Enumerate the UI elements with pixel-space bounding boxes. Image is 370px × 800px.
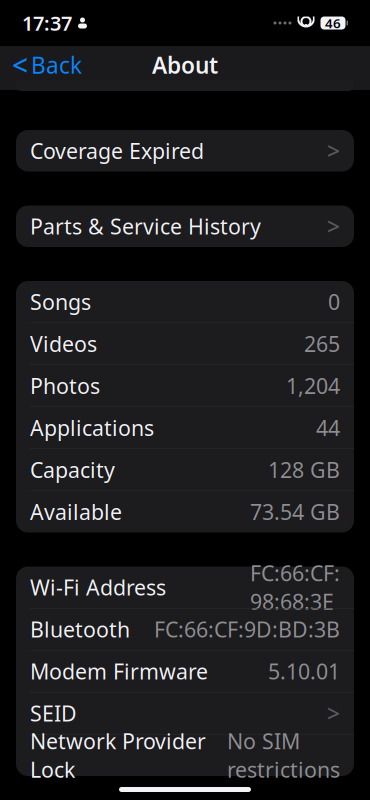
staticText: > <box>327 698 340 728</box>
staticText: SEID <box>30 699 77 727</box>
staticText: 1,204 <box>286 372 340 400</box>
staticText: Songs <box>30 288 91 316</box>
staticText: No SIM restrictions <box>227 727 340 784</box>
staticText: < <box>12 46 28 84</box>
staticText: About <box>152 50 218 80</box>
staticText: 44 <box>316 414 340 442</box>
staticText: > <box>327 211 340 241</box>
staticText: 128 GB <box>268 456 340 484</box>
staticText: Applications <box>30 414 154 442</box>
staticText: Modem Firmware <box>30 657 208 685</box>
staticText: Photos <box>30 372 100 400</box>
staticText: 265 <box>304 330 340 358</box>
staticText: FC:66:CF:9D:BD:3B <box>154 615 340 643</box>
staticText: 0 <box>328 288 340 316</box>
button[interactable]: Coverage Expired <box>16 130 354 171</box>
staticText: Videos <box>30 330 97 358</box>
staticText: 46 <box>325 14 341 32</box>
button[interactable]: < <box>4 46 90 84</box>
staticText: 5.10.01 <box>268 657 340 685</box>
staticText: Parts & Service History <box>30 212 261 240</box>
staticText: > <box>327 136 340 166</box>
button[interactable]: SEID <box>16 692 354 734</box>
staticText: Bluetooth <box>30 615 130 643</box>
staticText: 17:37 <box>22 10 72 36</box>
staticText: Coverage Expired <box>30 137 204 165</box>
staticText: Network Provider Lock <box>30 727 206 784</box>
staticText: Wi-Fi Address <box>30 573 166 601</box>
staticText: Capacity <box>30 456 115 484</box>
staticText: Available <box>30 498 122 526</box>
staticText: Back <box>31 50 82 80</box>
button[interactable]: Parts & Service History <box>16 205 354 247</box>
staticText: FC:66:CF:98:68:3E <box>250 559 340 616</box>
staticText: 73.54 GB <box>250 498 340 526</box>
